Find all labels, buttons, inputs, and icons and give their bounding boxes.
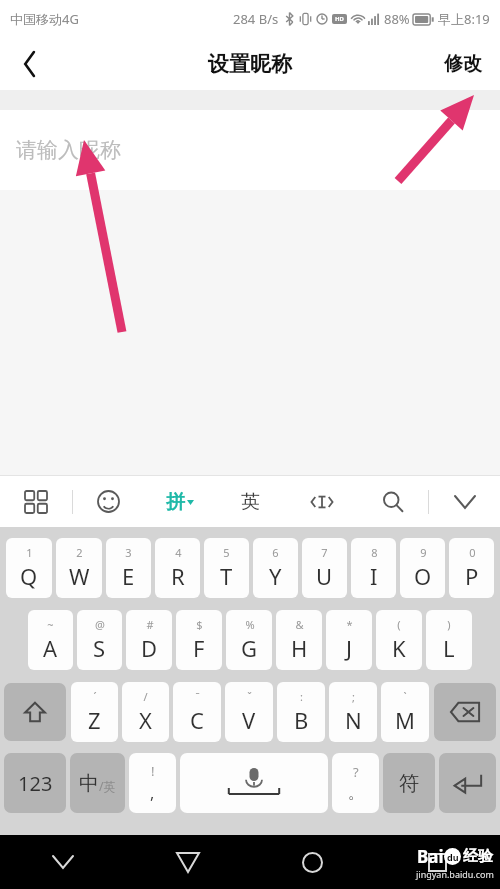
- staticText: I: [370, 561, 378, 591]
- button[interactable]: &: [276, 610, 322, 670]
- button[interactable]: %: [226, 610, 272, 670]
- staticText: du: [447, 851, 459, 863]
- staticText: ´: [93, 689, 97, 704]
- staticText: T: [220, 561, 233, 591]
- staticText: 7: [321, 545, 328, 560]
- staticText: L: [443, 633, 455, 663]
- button[interactable]: @: [77, 610, 122, 670]
- button[interactable]: !: [129, 753, 176, 813]
- staticText: U: [316, 561, 333, 591]
- button[interactable]: 2: [56, 538, 102, 598]
- staticText: G: [241, 633, 258, 663]
- button[interactable]: 空格/语音: [180, 753, 328, 813]
- button[interactable]: $: [176, 610, 222, 670]
- button[interactable]: 表情: [73, 476, 144, 527]
- staticText: R: [171, 561, 185, 591]
- staticText: N: [345, 705, 362, 735]
- staticText: HD: [335, 15, 344, 23]
- button[interactable]: 英文输入: [215, 476, 286, 527]
- button[interactable]: 返回: [125, 835, 250, 889]
- staticText: 0: [469, 545, 476, 560]
- button[interactable]: 主页: [250, 835, 375, 889]
- button[interactable]: 8: [351, 538, 396, 598]
- button[interactable]: 123: [4, 753, 66, 813]
- staticText: E: [122, 561, 135, 591]
- button[interactable]: 光标移动: [286, 476, 357, 527]
- staticText: 经验: [463, 847, 493, 866]
- button[interactable]: 1: [6, 538, 52, 598]
- staticText: 4: [175, 545, 182, 560]
- staticText: A: [43, 633, 58, 663]
- button[interactable]: 请输入昵称: [0, 110, 500, 190]
- button[interactable]: ˉ: [173, 682, 221, 742]
- button[interactable]: 修改: [426, 38, 500, 90]
- button[interactable]: 符: [383, 753, 435, 813]
- staticText: &: [295, 617, 304, 632]
- button[interactable]: #: [126, 610, 172, 670]
- staticText: 请输入昵称: [16, 137, 121, 163]
- button[interactable]: 拼音输入法: [144, 476, 215, 527]
- button[interactable]: ˇ: [225, 682, 273, 742]
- staticText: ~: [47, 617, 54, 632]
- staticText: Y: [269, 561, 282, 591]
- staticText: X: [139, 705, 152, 735]
- staticText: :: [300, 689, 303, 704]
- staticText: 5: [223, 545, 230, 560]
- staticText: 8: [371, 545, 378, 560]
- button[interactable]: ?: [332, 753, 379, 813]
- staticText: H: [291, 633, 308, 663]
- staticText: 2: [76, 545, 83, 560]
- staticText: !: [151, 762, 155, 780]
- button[interactable]: 7: [302, 538, 347, 598]
- button[interactable]: (: [376, 610, 422, 670]
- staticText: C: [190, 705, 204, 735]
- button[interactable]: ~: [28, 610, 73, 670]
- staticText: #: [146, 617, 154, 632]
- button[interactable]: ´: [71, 682, 118, 742]
- button[interactable]: `: [381, 682, 429, 742]
- button[interactable]: 搜索: [357, 476, 428, 527]
- staticText: @: [95, 617, 105, 632]
- staticText: 英: [241, 490, 260, 514]
- staticText: ˇ: [247, 689, 252, 704]
- staticText: 1: [26, 545, 33, 560]
- button[interactable]: 中: [70, 753, 125, 813]
- button[interactable]: 3: [106, 538, 151, 598]
- button[interactable]: 上档: [4, 683, 66, 741]
- staticText: Q: [20, 561, 38, 591]
- staticText: 中国移动4G: [10, 10, 79, 28]
- staticText: 早上8:19: [438, 10, 490, 28]
- staticText: 符: [399, 771, 419, 796]
- button[interactable]: *: [326, 610, 372, 670]
- button[interactable]: 键盘布局: [0, 476, 72, 527]
- staticText: jingyan.baidu.com: [416, 868, 494, 880]
- button[interactable]: 6: [253, 538, 298, 598]
- button[interactable]: 最近任务: [375, 835, 500, 889]
- staticText: 284 B/s: [233, 10, 279, 28]
- staticText: Bai: [417, 845, 444, 868]
- staticText: 设置昵称: [208, 51, 292, 77]
- button[interactable]: ): [426, 610, 472, 670]
- button[interactable]: /: [122, 682, 169, 742]
- button[interactable]: 0: [449, 538, 494, 598]
- button[interactable]: :: [277, 682, 325, 742]
- staticText: *: [346, 617, 353, 632]
- staticText: ?: [353, 763, 359, 781]
- staticText: D: [141, 633, 158, 663]
- staticText: ˉ: [195, 689, 200, 704]
- staticText: 9: [420, 545, 427, 560]
- button[interactable]: 返回: [0, 38, 60, 90]
- button[interactable]: 回车: [439, 753, 496, 813]
- button[interactable]: 9: [400, 538, 445, 598]
- staticText: 123: [18, 770, 53, 797]
- button[interactable]: 收起: [0, 835, 125, 889]
- button[interactable]: 删除: [434, 683, 496, 741]
- button[interactable]: 4: [155, 538, 200, 598]
- staticText: 3: [125, 545, 132, 560]
- staticText: 88%: [384, 10, 410, 28]
- staticText: P: [465, 561, 479, 591]
- staticText: ;: [352, 689, 355, 704]
- button[interactable]: ;: [329, 682, 377, 742]
- button[interactable]: 5: [204, 538, 249, 598]
- button[interactable]: 收起键盘: [429, 476, 500, 527]
